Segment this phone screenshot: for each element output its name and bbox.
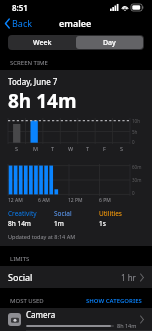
staticText: Day	[103, 38, 116, 48]
staticText: 1m	[54, 219, 64, 228]
button[interactable]: Day	[76, 36, 143, 49]
staticText: 12 AM	[8, 197, 23, 204]
staticText: SCREEN TIME	[10, 59, 48, 67]
staticText: Back	[12, 17, 33, 29]
button[interactable]: Social	[0, 266, 152, 288]
staticText: emalee	[59, 17, 92, 29]
staticText: 1 hr	[121, 272, 136, 283]
staticText: 8h 14m	[8, 88, 77, 114]
staticText: 10h	[132, 118, 140, 124]
staticText: Week	[33, 38, 52, 48]
staticText: Social	[54, 209, 72, 218]
staticText: 60m	[132, 164, 142, 170]
staticText: Updated today at 8:14 AM	[8, 233, 76, 240]
staticText: LIMITS	[10, 255, 30, 263]
staticText: 0	[132, 139, 135, 145]
staticText: 8:51	[12, 2, 28, 13]
staticText: 6 AM	[38, 197, 50, 204]
button[interactable]: Week	[9, 36, 76, 49]
staticText: 8h 14m	[8, 219, 31, 228]
staticText: T	[51, 145, 55, 152]
staticText: M	[33, 145, 38, 152]
staticText: S	[120, 145, 124, 152]
button[interactable]: Back	[0, 15, 39, 31]
staticText: 5h	[132, 129, 138, 135]
button[interactable]: SHOW CATEGORIES	[86, 297, 142, 305]
staticText: Utilities	[99, 209, 122, 218]
staticText: Creativity	[8, 209, 37, 218]
staticText: 12 PM	[68, 197, 83, 204]
staticText: S	[15, 145, 19, 152]
staticText: 30m	[132, 177, 142, 183]
staticText: SHOW CATEGORIES	[86, 297, 142, 305]
button[interactable]: Camera	[0, 308, 152, 330]
staticText: Camera	[26, 309, 56, 320]
staticText: W	[68, 145, 74, 152]
staticText: Social	[8, 271, 33, 283]
staticText: 1s	[99, 219, 106, 228]
staticText: T	[86, 145, 90, 152]
staticText: Today, June 7	[8, 76, 58, 87]
staticText: 0	[132, 190, 135, 196]
staticText: 6 PM	[99, 197, 111, 204]
staticText: 8h 14m	[117, 322, 137, 329]
staticText: MOST USED	[10, 297, 44, 305]
staticText: F	[103, 145, 106, 152]
